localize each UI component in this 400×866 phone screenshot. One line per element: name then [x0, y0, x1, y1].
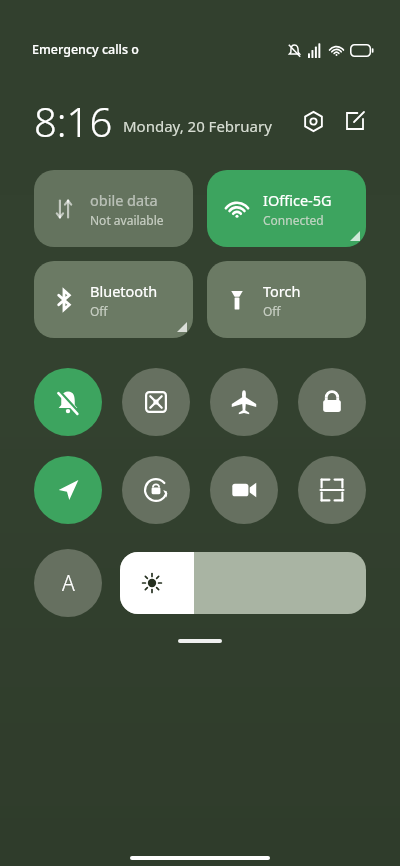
staticText: IOffice-5G	[263, 190, 332, 210]
button[interactable]: Silent mode	[34, 368, 102, 436]
staticText: Off	[90, 303, 108, 319]
button[interactable]: Location	[34, 456, 102, 524]
button[interactable]: Torch	[207, 261, 366, 338]
staticText: Emergency calls o	[32, 41, 139, 58]
button[interactable]: Bluetooth	[34, 261, 193, 338]
button[interactable]: Auto rotate	[122, 456, 190, 524]
button[interactable]: Edit	[338, 104, 372, 138]
button[interactable]: obile data	[34, 170, 193, 247]
button[interactable]: Airplane mode	[210, 368, 278, 436]
staticText: Bluetooth	[90, 281, 158, 301]
button[interactable]: Screen record	[210, 456, 278, 524]
staticText: Torch	[263, 281, 301, 301]
button[interactable]: Settings	[296, 104, 330, 138]
button[interactable]: Brightness	[120, 552, 366, 614]
staticText: Not available	[90, 212, 164, 228]
button[interactable]: IOffice-5G	[207, 170, 366, 247]
staticText: Off	[263, 303, 281, 319]
staticText: Connected	[263, 212, 324, 228]
button[interactable]: Auto brightness	[34, 549, 102, 617]
button[interactable]: Lock	[298, 368, 366, 436]
staticText: obile data	[90, 190, 158, 210]
staticText: A	[62, 569, 75, 598]
staticText: 8:16	[34, 94, 113, 148]
button[interactable]: Screen cast	[122, 368, 190, 436]
staticText: Monday, 20 February	[123, 116, 272, 136]
button[interactable]: Scan QR code	[298, 456, 366, 524]
